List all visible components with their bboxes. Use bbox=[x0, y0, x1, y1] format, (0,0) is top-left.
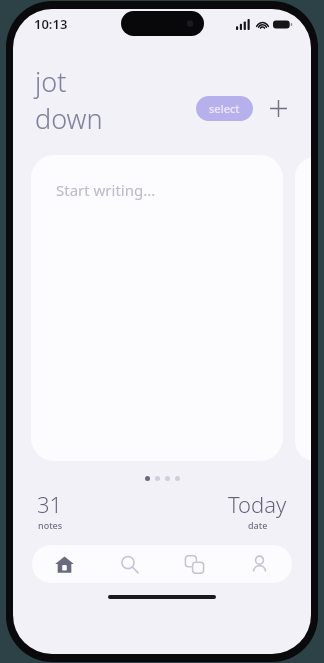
staticText: 10:13 bbox=[34, 15, 68, 33]
staticText: 31 bbox=[37, 489, 63, 519]
button[interactable]: Search bbox=[97, 545, 162, 583]
staticText: date bbox=[248, 519, 268, 531]
button[interactable]: Profile bbox=[227, 545, 292, 583]
button[interactable]: select bbox=[196, 96, 253, 121]
button[interactable]: Start writing... bbox=[31, 155, 283, 461]
staticText: notes bbox=[38, 519, 63, 531]
button[interactable]: Home bbox=[32, 545, 97, 583]
staticText: Today bbox=[228, 489, 287, 519]
staticText: Start writing... bbox=[56, 180, 156, 200]
button[interactable]: Notes bbox=[162, 545, 227, 583]
button[interactable]: Add note bbox=[265, 95, 291, 121]
staticText: jot bbox=[35, 63, 67, 100]
staticText: down bbox=[35, 100, 103, 137]
staticText: select bbox=[209, 101, 240, 116]
